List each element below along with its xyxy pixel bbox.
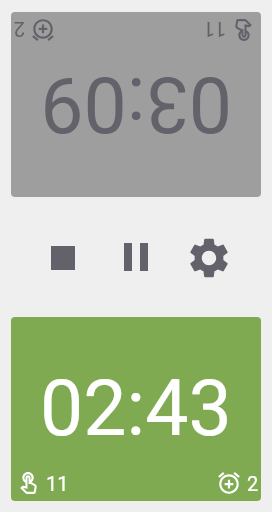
button[interactable]: Pause	[112, 233, 159, 280]
button[interactable]: 03:09	[11, 12, 261, 197]
button[interactable]: Settings	[185, 234, 233, 282]
button[interactable]: 02:43	[11, 317, 261, 501]
staticText: 02:43	[40, 364, 232, 454]
button[interactable]: Stop	[39, 234, 86, 281]
staticText: 2	[13, 18, 25, 41]
staticText: 03:09	[40, 59, 232, 149]
staticText: 2	[247, 472, 259, 495]
staticText: 11	[203, 18, 226, 41]
staticText: 11	[46, 472, 69, 495]
